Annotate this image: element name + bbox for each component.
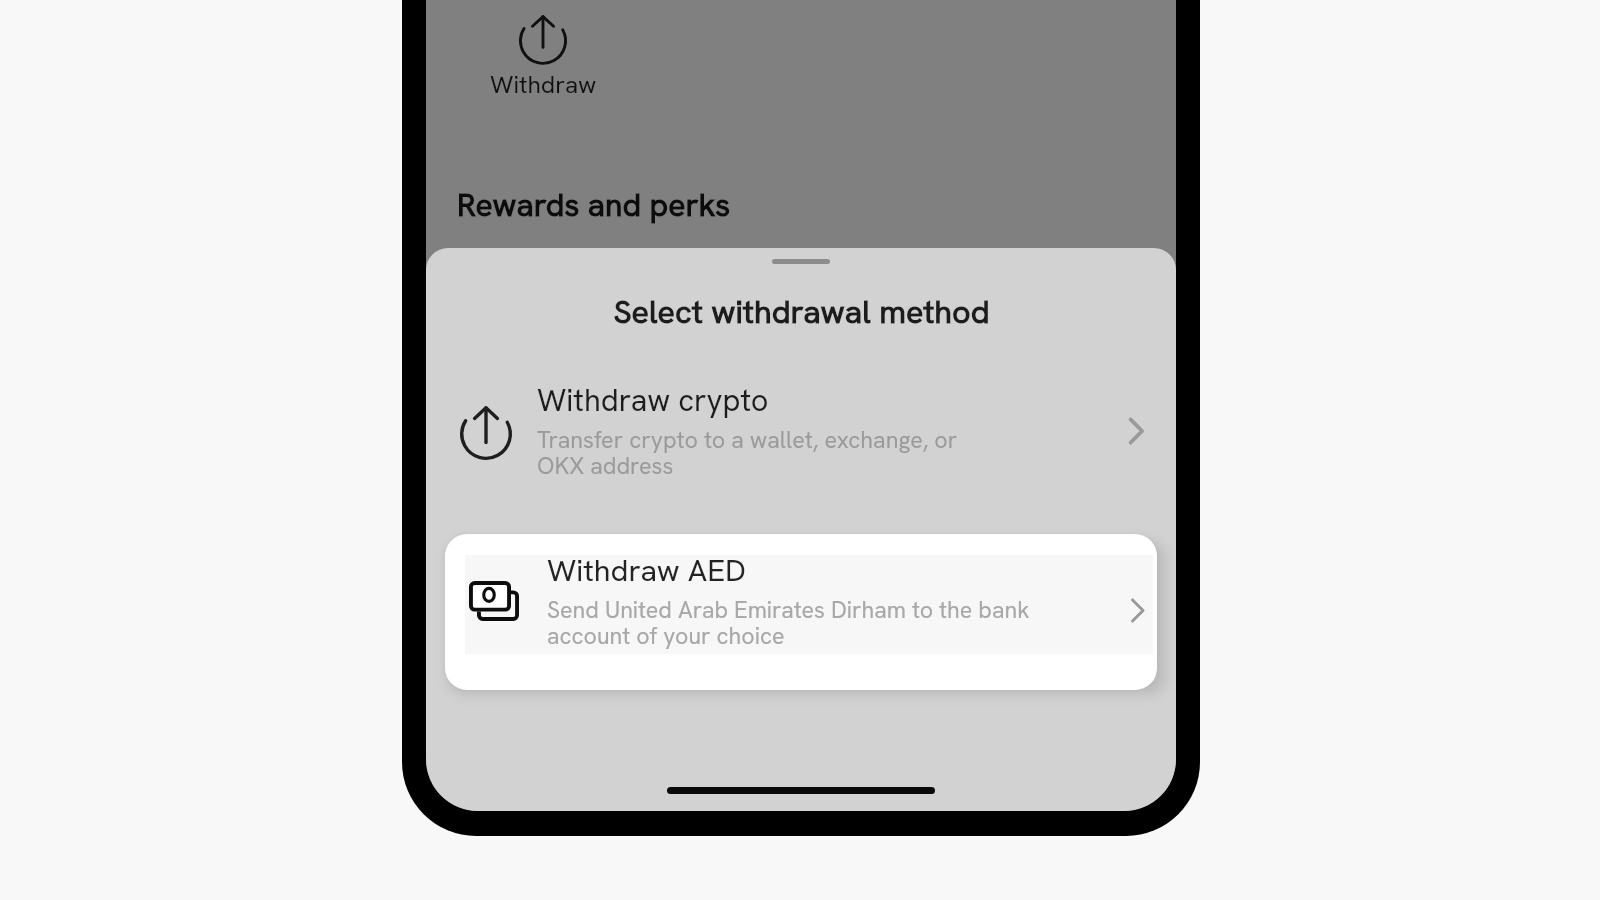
button[interactable]: Withdraw crypto <box>426 378 1176 482</box>
button[interactable]: Withdraw AED <box>445 534 1157 690</box>
staticText: Select withdrawal method <box>613 291 990 333</box>
staticText: Send United Arab Emirates Dirham to the … <box>547 595 1030 651</box>
button[interactable]: Open withdraw AED <box>1117 577 1157 647</box>
staticText: Withdraw <box>490 68 597 100</box>
staticText: Withdraw AED <box>547 550 746 590</box>
button[interactable]: Withdraw <box>467 15 619 100</box>
staticText: Rewards and perks <box>457 184 731 226</box>
staticText: Withdraw crypto <box>537 380 769 420</box>
staticText: Transfer crypto to a wallet, exchange, o… <box>537 425 958 481</box>
button[interactable]: Open withdraw crypto <box>1095 395 1176 465</box>
